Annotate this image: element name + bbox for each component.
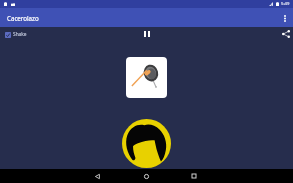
button[interactable]: Pot — [126, 57, 167, 98]
button[interactable]: Share — [279, 27, 293, 41]
button[interactable]: Shake — [5, 31, 27, 38]
button[interactable]: Pause — [139, 27, 155, 41]
button[interactable]: Recents — [187, 169, 201, 183]
button[interactable]: More options — [277, 10, 293, 26]
button[interactable]: Person — [122, 119, 171, 168]
staticText: 5:49 — [281, 1, 290, 7]
staticText: Cacerolazo — [7, 14, 39, 22]
staticText: Shake — [13, 31, 27, 38]
button[interactable]: Back — [90, 169, 104, 183]
button[interactable]: Home — [139, 169, 153, 183]
